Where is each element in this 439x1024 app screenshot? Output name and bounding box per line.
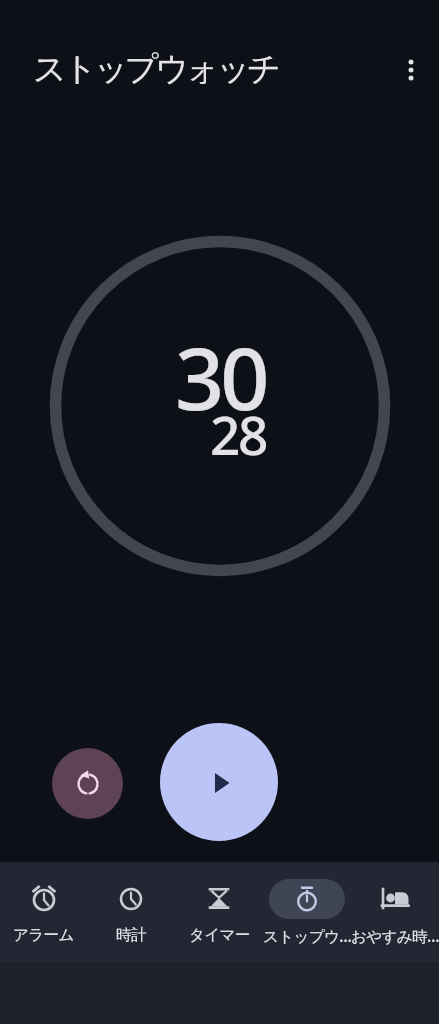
button[interactable]: アラーム bbox=[0, 862, 87, 962]
button[interactable] bbox=[395, 54, 427, 86]
staticText: ストップウ… bbox=[263, 925, 351, 946]
button[interactable]: おやすみ時… bbox=[351, 862, 439, 962]
staticText: 時計 bbox=[116, 925, 146, 945]
staticText: タイマー bbox=[189, 925, 250, 945]
staticText: おやすみ時… bbox=[351, 925, 439, 946]
staticText: 30 bbox=[175, 318, 266, 435]
button[interactable]: タイマー bbox=[175, 862, 263, 962]
button[interactable] bbox=[160, 723, 278, 841]
staticText: ストップウォッチ bbox=[33, 48, 278, 90]
staticText: アラーム bbox=[13, 925, 74, 945]
button[interactable] bbox=[52, 748, 123, 819]
button[interactable]: 時計 bbox=[87, 862, 175, 962]
staticText: 28 bbox=[210, 398, 267, 470]
button[interactable]: ストップウ… bbox=[263, 862, 351, 962]
